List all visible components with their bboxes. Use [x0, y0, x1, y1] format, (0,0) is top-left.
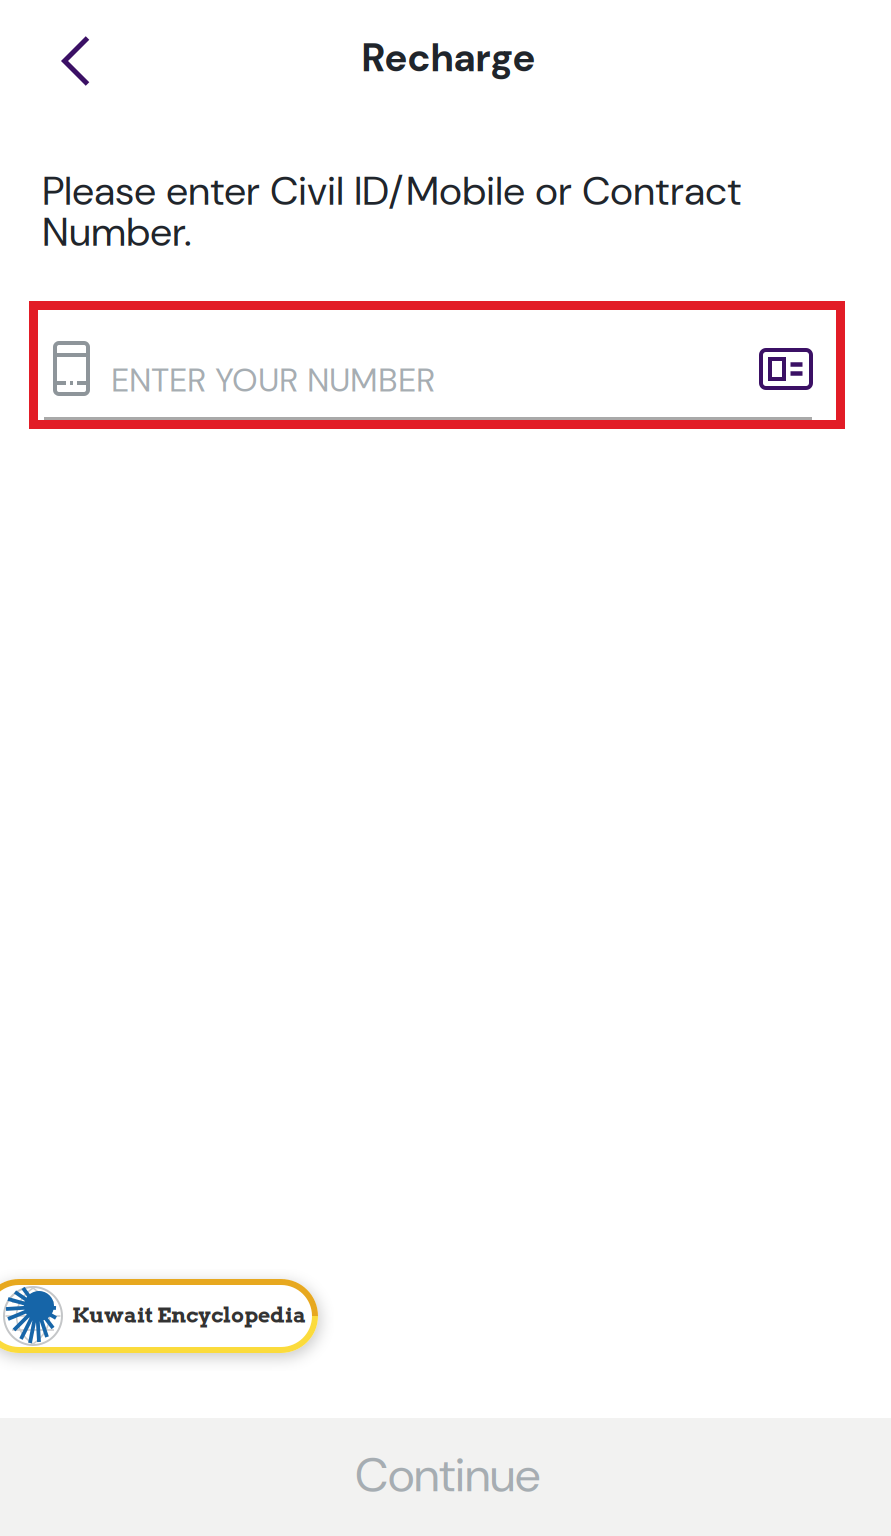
- staticText: Continue: [355, 1444, 540, 1506]
- staticText: Number.: [42, 206, 192, 258]
- button[interactable]: Kuwait Encyclopedia: [0, 1279, 318, 1353]
- button[interactable]: Continue: [0, 1418, 891, 1536]
- staticText: Please enter Civil ID/Mobile or Contract: [42, 165, 742, 217]
- staticText: Kuwait Encyclopedia: [72, 1302, 306, 1328]
- staticText: Recharge: [361, 33, 535, 83]
- staticText: ENTER YOUR NUMBER: [111, 359, 435, 401]
- button[interactable]: Back: [0, 17, 114, 96]
- button[interactable]: Scan Civil ID: [761, 350, 811, 388]
